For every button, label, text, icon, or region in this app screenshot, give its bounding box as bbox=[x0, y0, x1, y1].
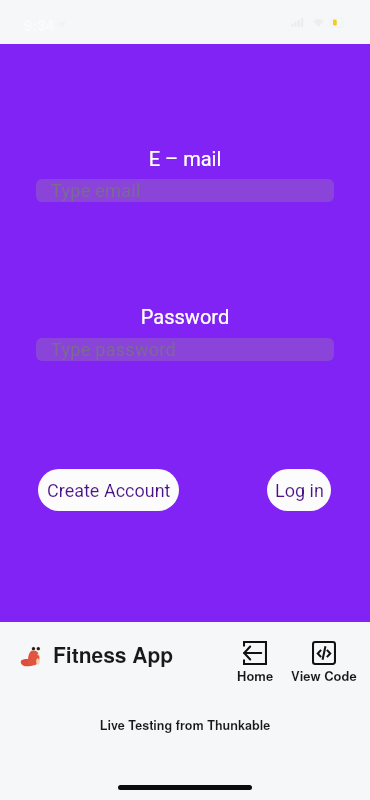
other: Home bbox=[243, 641, 267, 665]
button[interactable]: Create Account bbox=[38, 469, 179, 511]
button[interactable]: Type email bbox=[36, 179, 334, 202]
staticText: Type email bbox=[51, 180, 141, 201]
button[interactable]: Log in bbox=[267, 469, 331, 511]
staticText: Password bbox=[0, 305, 370, 328]
button[interactable]: Home bbox=[236, 641, 274, 685]
staticText: Log in bbox=[275, 480, 324, 501]
other: View Code bbox=[312, 641, 336, 665]
staticText: Create Account bbox=[47, 480, 171, 501]
staticText: View Code bbox=[291, 666, 357, 685]
staticText: Type password bbox=[51, 339, 176, 360]
staticText: Live Testing from Thunkable bbox=[0, 716, 370, 734]
staticText: Home bbox=[237, 666, 274, 685]
staticText: E – mail bbox=[0, 147, 370, 170]
button[interactable]: View Code bbox=[290, 641, 358, 685]
staticText: Fitness App bbox=[53, 639, 174, 669]
button[interactable]: Type password bbox=[36, 338, 334, 361]
button[interactable]: Fitness App bbox=[19, 641, 174, 671]
